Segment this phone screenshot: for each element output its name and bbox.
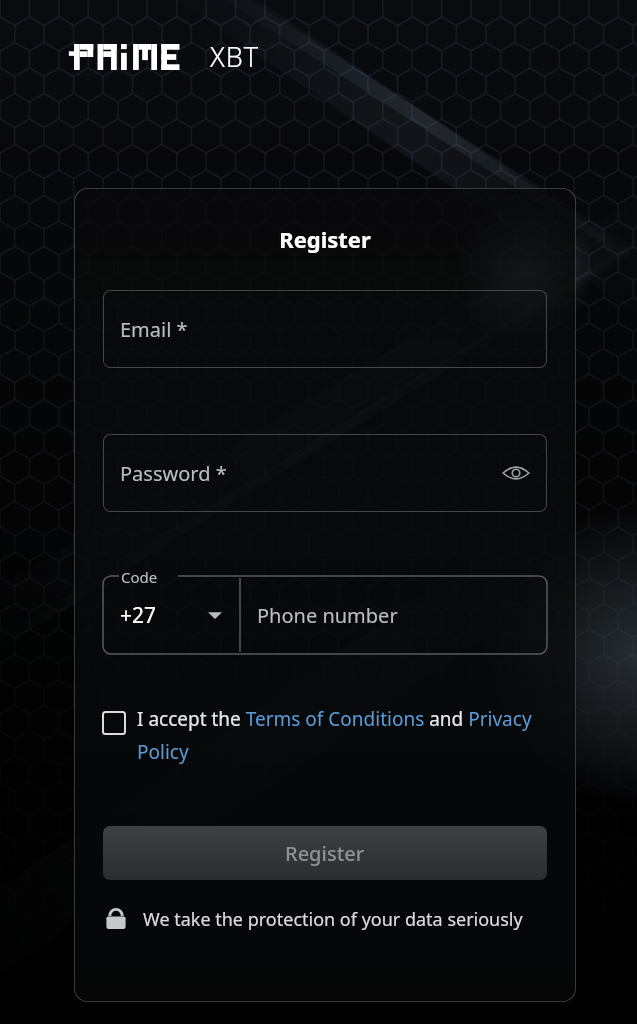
button[interactable]: Phone number: [240, 576, 547, 654]
staticText: Register: [74, 224, 576, 254]
button[interactable]: I accept the Terms of Conditions and Pri…: [103, 706, 552, 764]
staticText: XBT: [210, 38, 260, 75]
button[interactable]: Country code: [103, 576, 240, 654]
staticText: Email *: [120, 316, 188, 343]
staticText: Code: [121, 567, 158, 587]
staticText: I accept the Terms of Conditions and Pri…: [137, 706, 552, 764]
button[interactable]: Email *: [103, 290, 547, 368]
staticText: We take the protection of your data seri…: [143, 907, 523, 932]
button[interactable]: Show password: [499, 456, 533, 490]
staticText: +27: [120, 601, 157, 630]
button[interactable]: Register: [103, 826, 547, 880]
button[interactable]: Password *: [103, 434, 547, 512]
staticText: Phone number: [257, 602, 398, 629]
staticText: Password *: [120, 460, 227, 487]
staticText: Register: [285, 840, 365, 867]
